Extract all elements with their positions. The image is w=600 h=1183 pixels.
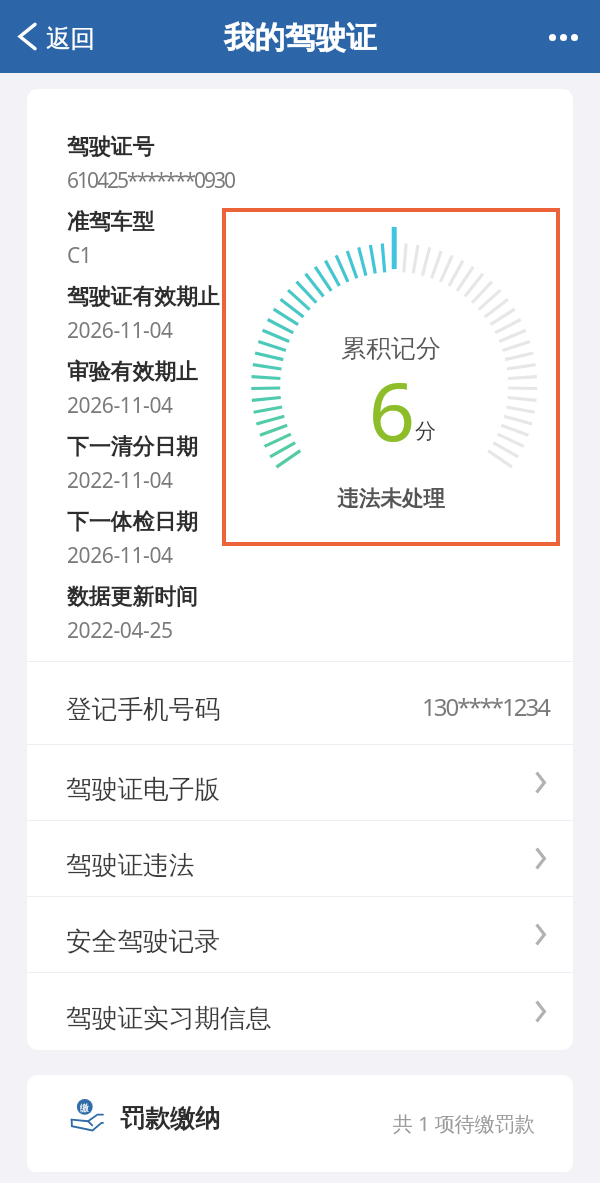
button[interactable]: 驾驶证实习期信息 [27, 973, 573, 1050]
staticText: 缴 [80, 1102, 89, 1113]
staticText: 2026-11-04 [67, 316, 173, 345]
staticText: 2026-11-04 [67, 541, 173, 570]
staticText: 2022-11-04 [67, 466, 173, 495]
staticText: 驾驶证违法 [66, 849, 195, 881]
button[interactable]: 登记手机号码 [27, 662, 573, 744]
staticText: 130****1234 [422, 690, 549, 723]
staticText: 驾驶证号 [67, 135, 155, 161]
button[interactable]: 驾驶证违法 [27, 821, 573, 896]
staticText: 驾驶证实习期信息 [66, 1002, 272, 1034]
staticText: 驾驶证电子版 [66, 773, 221, 805]
button[interactable]: 返回 [18, 21, 95, 52]
staticText: 2022-04-25 [67, 616, 173, 645]
staticText: 2026-11-04 [67, 391, 173, 420]
staticText: 分 [415, 418, 436, 444]
staticText: 驾驶证有效期止 [67, 285, 220, 311]
button[interactable]: 安全驾驶记录 [27, 897, 573, 972]
staticText: 准驾车型 [67, 210, 155, 236]
staticText: 违法未处理 [222, 485, 560, 512]
staticText: 返回 [46, 23, 95, 54]
staticText: 610425*******0930 [67, 166, 235, 195]
staticText: 审验有效期止 [67, 360, 198, 386]
staticText: 下一清分日期 [67, 435, 198, 461]
staticText: 罚款缴纳 [120, 1103, 220, 1134]
staticText: 累积记分 [222, 333, 560, 364]
button[interactable]: 缴 [27, 1075, 573, 1172]
staticText: 共 1 项待缴罚款 [393, 1110, 535, 1137]
staticText: C1 [67, 241, 92, 270]
staticText: 登记手机号码 [66, 693, 221, 725]
staticText: 安全驾驶记录 [66, 925, 221, 957]
staticText: 数据更新时间 [67, 585, 198, 611]
button[interactable]: More options [537, 11, 589, 63]
staticText: 我的驾驶证 [224, 19, 377, 57]
button[interactable]: 驾驶证电子版 [27, 745, 573, 820]
staticText: 6 [223, 354, 561, 464]
staticText: 下一体检日期 [67, 510, 198, 536]
